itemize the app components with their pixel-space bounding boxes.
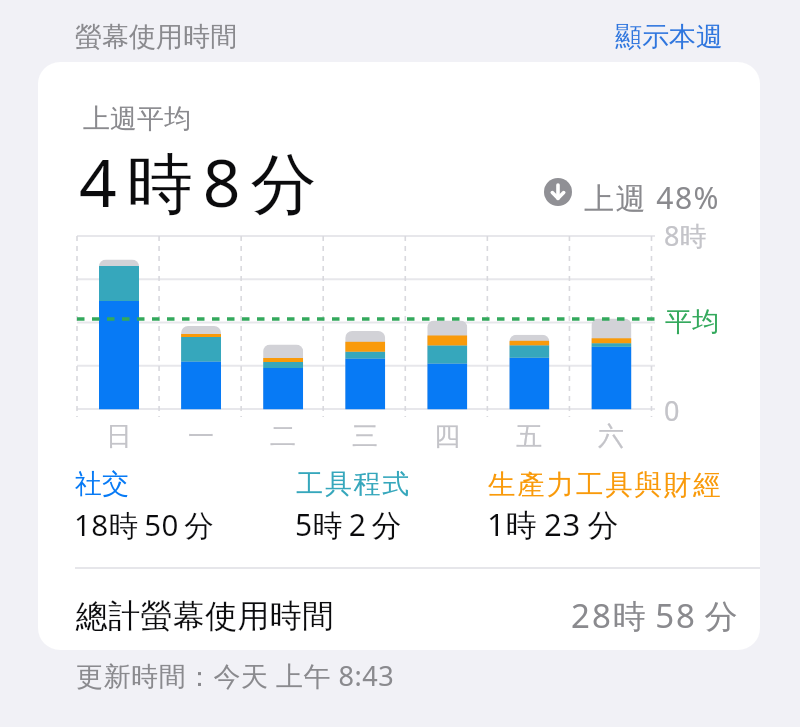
button[interactable]: 上週平均 <box>38 62 760 650</box>
staticText: 四 <box>434 420 460 453</box>
staticText: 28時 58 分 <box>571 593 740 638</box>
staticText: 二 <box>270 420 296 453</box>
staticText: 18時 50 分 <box>74 504 215 544</box>
staticText: 更新時間：今天 上午 8:43 <box>76 657 395 694</box>
staticText: 1時 23 分 <box>487 503 620 545</box>
staticText: 生產力工具與財經 <box>488 468 723 503</box>
staticText: 8時 <box>664 217 707 254</box>
staticText: 平均 <box>665 305 719 339</box>
button[interactable]: 顯示本週 <box>610 16 718 50</box>
staticText: 顯示本週 <box>615 20 723 54</box>
staticText: 工具程式 <box>296 467 411 501</box>
staticText: 日 <box>106 420 132 453</box>
staticText: 社交 <box>75 467 129 501</box>
staticText: 5時 2 分 <box>295 504 403 545</box>
staticText: 五 <box>516 420 542 453</box>
staticText: 0 <box>664 392 680 429</box>
staticText: 三 <box>352 420 378 453</box>
staticText: 上週平均 <box>83 102 191 136</box>
staticText: 上週 48% <box>584 177 721 218</box>
staticText: 一 <box>188 420 214 453</box>
staticText: 4時8分 <box>79 136 327 226</box>
staticText: 六 <box>598 420 624 453</box>
staticText: 螢幕使用時間 <box>75 20 237 54</box>
staticText: 總計螢幕使用時間 <box>76 596 335 636</box>
